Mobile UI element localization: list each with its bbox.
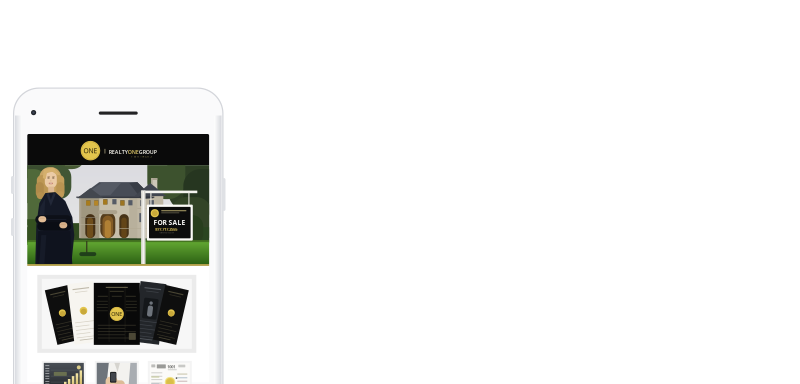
button[interactable]: Documents [148, 361, 192, 384]
staticText: GROUP [139, 148, 157, 155]
button[interactable]: Market statistics [42, 361, 86, 384]
staticText: realtyonegroup.com [159, 232, 174, 234]
staticText: 1001 [167, 364, 175, 369]
staticText: FOR SALE [153, 218, 185, 227]
staticText: ONE [83, 146, 97, 155]
button[interactable]: Realty ONE Group Partners [27, 132, 209, 165]
button[interactable]: Mobile tools [95, 361, 139, 384]
staticText: ONE [128, 148, 139, 155]
staticText: P A R T N E R S [131, 155, 151, 158]
staticText: ONE [111, 310, 122, 317]
staticText: 877.717.2555 [155, 226, 177, 232]
button[interactable]: Marketing brochures [37, 275, 196, 353]
staticText: REALTY [109, 148, 128, 155]
